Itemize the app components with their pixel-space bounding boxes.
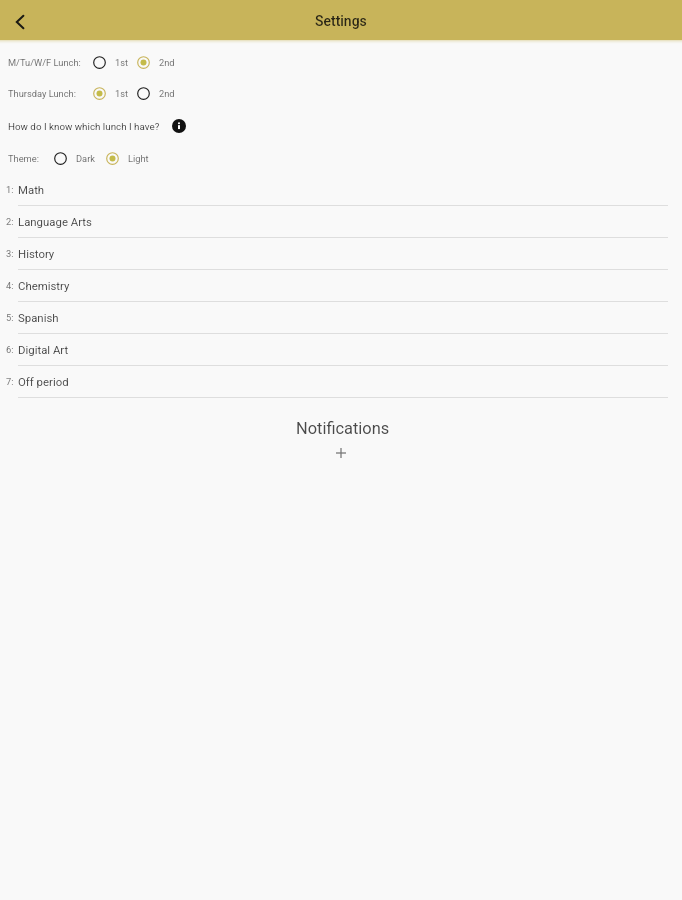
button[interactable]: 7: [0, 366, 682, 398]
button[interactable]: 6: [0, 334, 682, 366]
staticText: 1: [6, 184, 14, 195]
staticText: Light [128, 153, 149, 164]
staticText: 5: [6, 312, 14, 323]
button[interactable]: 2nd [137, 84, 175, 102]
button[interactable]: 3: [0, 238, 682, 270]
staticText: Notifications [296, 419, 390, 438]
staticText: Theme: [8, 153, 39, 164]
staticText: Off period [18, 375, 69, 388]
staticText: Dark [76, 153, 96, 164]
staticText: 1st [115, 88, 129, 99]
staticText: Settings [315, 13, 367, 29]
staticText: M/Tu/W/F Lunch: [8, 57, 81, 68]
button[interactable]: Info [171, 118, 187, 134]
button[interactable]: 5: [0, 302, 682, 334]
button[interactable]: Light [106, 149, 149, 167]
button[interactable]: 1st [93, 84, 129, 102]
staticText: 1st [115, 57, 129, 68]
staticText: 3: [6, 248, 14, 259]
button[interactable]: Back [2, 2, 38, 38]
staticText: 2nd [159, 57, 175, 68]
staticText: Language Arts [18, 215, 92, 228]
staticText: 2nd [159, 88, 175, 99]
button[interactable]: 2: [0, 206, 682, 238]
staticText: Digital Art [18, 343, 69, 356]
staticText: Thursday Lunch: [8, 88, 76, 99]
staticText: Chemistry [18, 279, 70, 292]
staticText: 4: [6, 280, 14, 291]
staticText: History [18, 247, 55, 260]
staticText: How do I know which lunch I have? [8, 121, 160, 132]
button[interactable]: Dark [54, 149, 96, 167]
button[interactable]: 2nd [137, 53, 175, 71]
staticText: Spanish [18, 311, 59, 324]
button[interactable]: 1st [93, 53, 129, 71]
staticText: Math [18, 183, 45, 196]
button[interactable]: 4: [0, 270, 682, 302]
staticText: 6: [6, 344, 14, 355]
button[interactable]: Add notification [331, 443, 351, 463]
button[interactable]: 1: [0, 174, 682, 206]
staticText: 7: [6, 376, 14, 387]
staticText: 2: [6, 216, 14, 227]
